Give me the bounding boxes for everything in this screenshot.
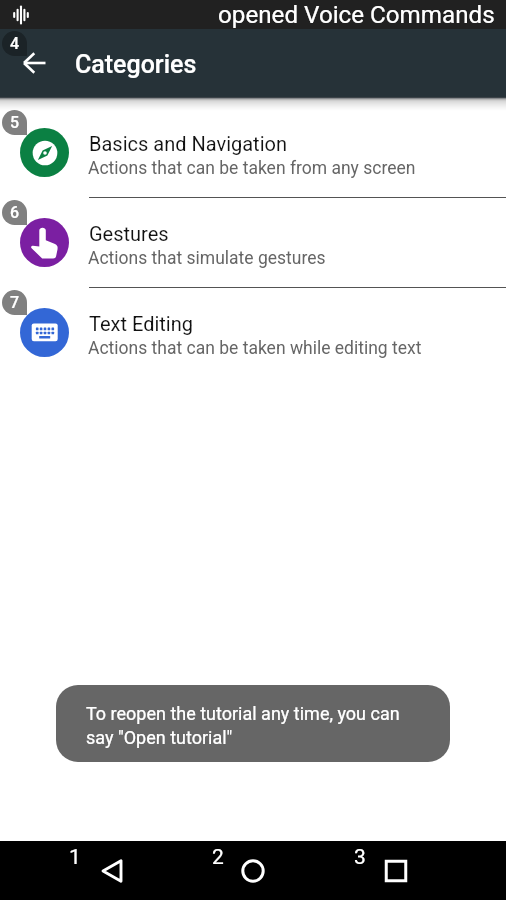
other: Voice activity: [9, 3, 33, 27]
staticText: 2: [212, 845, 224, 870]
button[interactable]: Recent apps: [362, 841, 430, 900]
staticText: 7: [10, 293, 20, 312]
staticText: Actions that can be taken from any scree…: [88, 158, 416, 179]
button[interactable]: Text Editing: [0, 287, 506, 377]
button[interactable]: Basics and Navigation: [0, 107, 506, 197]
staticText: 1: [69, 845, 81, 870]
button[interactable]: Gestures: [0, 197, 506, 287]
button[interactable]: Back: [78, 841, 146, 900]
staticText: opened Voice Commands: [218, 1, 495, 29]
staticText: Actions that simulate gestures: [88, 248, 326, 269]
staticText: Actions that can be taken while editing …: [88, 338, 422, 359]
staticText: Gestures: [89, 222, 169, 245]
staticText: 4: [10, 34, 20, 53]
staticText: Categories: [75, 50, 197, 79]
button[interactable]: To reopen the tutorial any time, you can…: [56, 685, 450, 762]
button[interactable]: Navigate up: [14, 42, 56, 84]
staticText: 3: [354, 845, 366, 870]
staticText: Text Editing: [89, 312, 194, 335]
button[interactable]: Home: [219, 841, 287, 900]
staticText: 5: [10, 113, 20, 132]
staticText: To reopen the tutorial any time, you can…: [86, 703, 400, 748]
staticText: 6: [10, 203, 20, 222]
staticText: Basics and Navigation: [89, 132, 287, 155]
